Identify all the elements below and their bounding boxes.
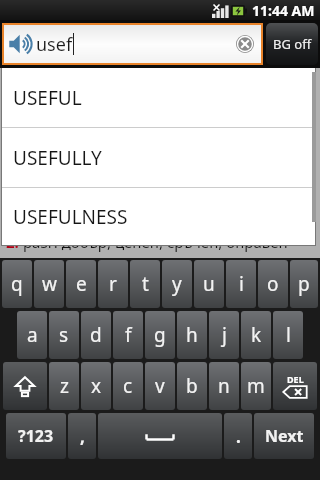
- staticText: t: [142, 271, 149, 297]
- staticText: BG off: [273, 35, 312, 53]
- button[interactable]: y: [162, 260, 192, 308]
- button[interactable]: BG off: [266, 23, 318, 65]
- staticText: g: [154, 322, 166, 348]
- button[interactable]: c: [113, 362, 143, 410]
- staticText: USEFULNESS: [13, 204, 128, 230]
- staticText: q: [11, 271, 23, 297]
- button[interactable]: t: [130, 260, 160, 308]
- button[interactable]: ,: [68, 413, 96, 459]
- button[interactable]: k: [241, 311, 271, 359]
- staticText: ?123: [18, 425, 54, 447]
- staticText: 2.: [6, 232, 19, 252]
- button[interactable]: l: [273, 311, 303, 359]
- staticText: e: [76, 271, 87, 297]
- button[interactable]: USEFUL: [2, 68, 315, 127]
- staticText: USEFULLY: [13, 145, 102, 171]
- staticText: i: [239, 271, 244, 297]
- staticText: v: [155, 373, 165, 399]
- button[interactable]: USEFULNESS: [2, 188, 315, 245]
- button[interactable]: u: [194, 260, 224, 308]
- staticText: s: [59, 322, 69, 348]
- other: Delete: [282, 385, 308, 399]
- staticText: w: [42, 271, 57, 297]
- staticText: n: [218, 373, 230, 399]
- staticText: ,: [80, 425, 85, 448]
- staticText: USEFUL: [13, 85, 82, 111]
- button[interactable]: Clear text: [233, 32, 257, 56]
- staticText: p: [298, 271, 310, 297]
- button[interactable]: s: [49, 311, 79, 359]
- button[interactable]: e: [66, 260, 96, 308]
- staticText: x: [91, 373, 102, 399]
- other: Shift: [14, 375, 36, 397]
- button[interactable]: x: [81, 362, 111, 410]
- staticText: f: [125, 322, 132, 348]
- button[interactable]: z: [49, 362, 79, 410]
- staticText: m: [247, 373, 265, 399]
- button[interactable]: q: [2, 260, 32, 308]
- staticText: o: [267, 271, 279, 297]
- button[interactable]: DEL: [273, 362, 317, 410]
- button[interactable]: i: [226, 260, 256, 308]
- button[interactable]: w: [34, 260, 64, 308]
- button[interactable]: d: [81, 311, 111, 359]
- staticText: y: [172, 271, 182, 297]
- button[interactable]: Pronounce: [4, 25, 261, 63]
- button[interactable]: Shift: [3, 362, 47, 410]
- button[interactable]: j: [209, 311, 239, 359]
- button[interactable]: r: [98, 260, 128, 308]
- button[interactable]: Space: [98, 413, 222, 459]
- button[interactable]: Next: [254, 413, 314, 459]
- staticText: h: [186, 322, 198, 348]
- staticText: DEL: [287, 373, 304, 385]
- button[interactable]: ?123: [6, 413, 66, 459]
- staticText: d: [90, 322, 102, 348]
- button[interactable]: f: [113, 311, 143, 359]
- staticText: z: [60, 373, 69, 399]
- staticText: .: [236, 425, 241, 448]
- button[interactable]: v: [145, 362, 175, 410]
- staticText: разг. добър, ценен, сръчен, оправен: [23, 232, 288, 252]
- staticText: Next: [265, 425, 304, 447]
- staticText: usef: [36, 32, 73, 57]
- button[interactable]: .: [224, 413, 252, 459]
- other: Pronounce: [8, 33, 34, 55]
- staticText: 11:44 AM: [252, 1, 315, 20]
- button[interactable]: h: [177, 311, 207, 359]
- button[interactable]: g: [145, 311, 175, 359]
- other: Space: [145, 430, 175, 442]
- staticText: k: [251, 322, 262, 348]
- button[interactable]: USEFULLY: [2, 128, 315, 187]
- staticText: l: [286, 322, 291, 348]
- button[interactable]: p: [290, 260, 318, 308]
- staticText: u: [203, 271, 215, 297]
- button[interactable]: a: [17, 311, 47, 359]
- staticText: c: [123, 373, 133, 399]
- button[interactable]: n: [209, 362, 239, 410]
- button[interactable]: b: [177, 362, 207, 410]
- staticText: a: [27, 322, 38, 348]
- button[interactable]: m: [241, 362, 271, 410]
- staticText: b: [186, 373, 198, 399]
- button[interactable]: o: [258, 260, 288, 308]
- staticText: r: [109, 271, 117, 297]
- staticText: j: [222, 322, 227, 348]
